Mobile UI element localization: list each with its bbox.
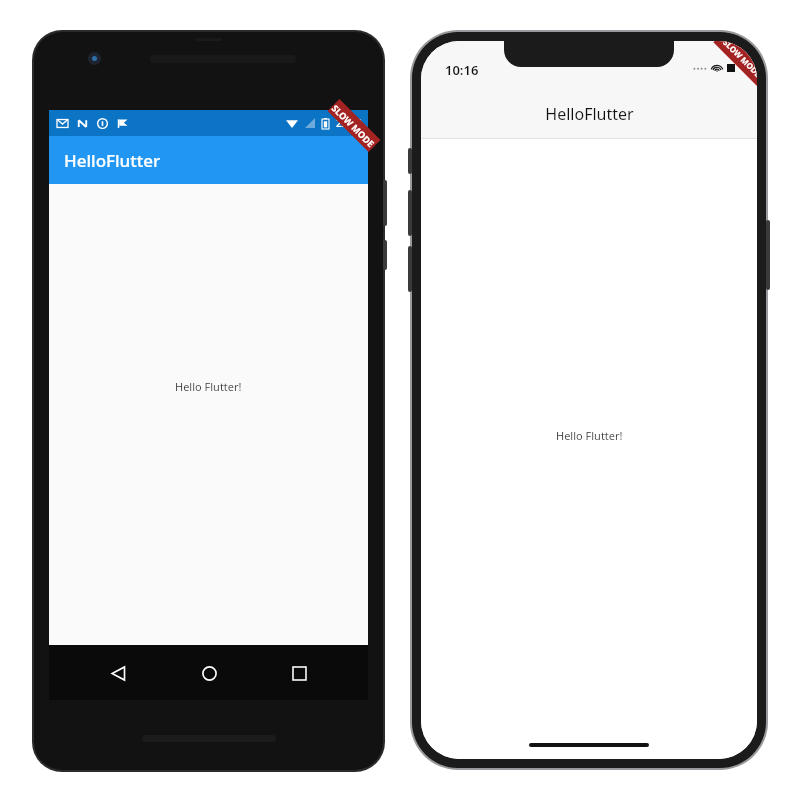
staticText: 10:16 bbox=[445, 61, 479, 79]
button[interactable]: Recent apps bbox=[277, 651, 321, 695]
staticText: 22:20 bbox=[336, 116, 362, 130]
staticText: SLOW MODE bbox=[330, 102, 378, 150]
button[interactable]: Back bbox=[96, 651, 140, 695]
staticText: SLOW MODE bbox=[721, 41, 757, 79]
staticText: Hello Flutter! bbox=[556, 428, 623, 443]
button[interactable]: Home bbox=[187, 651, 231, 695]
staticText: HelloFlutter bbox=[545, 103, 634, 125]
staticText: HelloFlutter bbox=[64, 149, 161, 172]
staticText: Hello Flutter! bbox=[175, 379, 242, 394]
